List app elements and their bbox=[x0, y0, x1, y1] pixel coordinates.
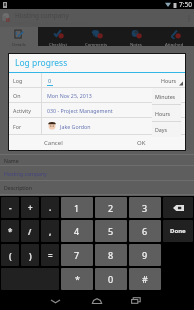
button[interactable]: OK bbox=[97, 135, 185, 150]
staticText: 7 bbox=[74, 249, 80, 261]
button[interactable]: Back bbox=[41, 291, 69, 310]
button[interactable]: Details bbox=[0, 27, 38, 46]
staticText: Comments bbox=[85, 41, 108, 46]
button[interactable]: Done bbox=[163, 220, 193, 242]
staticText: Mon Nov 25, 2013 bbox=[47, 92, 92, 99]
staticText: 7:50 bbox=[179, 0, 192, 9]
button[interactable]: Cancel bbox=[9, 135, 97, 150]
button[interactable]: 4 bbox=[61, 220, 93, 242]
staticText: Hours bbox=[161, 77, 177, 84]
button[interactable]: , bbox=[41, 220, 59, 242]
staticText: 6 bbox=[142, 225, 148, 237]
staticText: Hosting company bbox=[15, 11, 69, 20]
button[interactable]: 3 bbox=[129, 197, 161, 218]
staticText: Cancel bbox=[44, 139, 63, 147]
staticText: 4 bbox=[74, 225, 80, 237]
button[interactable]: Home bbox=[83, 291, 111, 310]
staticText: * bbox=[8, 226, 13, 237]
button[interactable]: 7 bbox=[61, 244, 93, 266]
button[interactable]: 1 bbox=[61, 197, 93, 218]
staticText: , bbox=[49, 226, 52, 237]
button[interactable]: * bbox=[1, 220, 19, 242]
staticText: - bbox=[9, 202, 12, 213]
button[interactable]: # bbox=[129, 268, 161, 290]
button[interactable]: Days bbox=[155, 122, 181, 137]
button[interactable]: 5 bbox=[95, 220, 127, 242]
button[interactable]: 2 bbox=[95, 197, 127, 218]
staticText: For bbox=[13, 123, 22, 130]
staticText: ) bbox=[29, 250, 32, 261]
button[interactable]: = bbox=[41, 244, 59, 266]
button[interactable]: - bbox=[1, 197, 19, 218]
staticText: Description bbox=[4, 184, 32, 191]
button[interactable]: ) bbox=[21, 244, 39, 266]
staticText: Checklist bbox=[49, 41, 67, 46]
button[interactable]: . bbox=[41, 197, 59, 218]
button[interactable]: / bbox=[21, 220, 39, 242]
staticText: 9 bbox=[142, 249, 148, 261]
button[interactable]: Attached bbox=[155, 27, 194, 46]
staticText: Jake Gordon bbox=[60, 123, 91, 130]
staticText: 1 bbox=[74, 202, 80, 214]
staticText: Log progress bbox=[15, 57, 68, 69]
button[interactable]: 6 bbox=[129, 220, 161, 242]
staticText: Log bbox=[13, 77, 23, 84]
staticText: . bbox=[49, 202, 52, 213]
staticText: 030 - Project Management bbox=[47, 107, 113, 114]
staticText: Hours bbox=[155, 110, 171, 117]
staticText: Details bbox=[12, 41, 26, 46]
staticText: * bbox=[75, 273, 80, 285]
staticText: 2 bbox=[108, 202, 114, 214]
staticText: On bbox=[13, 92, 21, 99]
button[interactable]: + bbox=[21, 197, 39, 218]
button[interactable]: Minutes bbox=[155, 88, 181, 104]
button[interactable]: Comments bbox=[77, 27, 116, 46]
staticText: Name bbox=[4, 157, 19, 164]
button[interactable]: Hours bbox=[155, 105, 181, 121]
staticText: # bbox=[142, 273, 148, 285]
button[interactable]: Notes bbox=[116, 27, 155, 46]
staticText: = bbox=[48, 250, 53, 261]
button[interactable]: Backspace bbox=[163, 197, 193, 218]
button[interactable]: * bbox=[61, 268, 93, 290]
button[interactable]: 0 bbox=[95, 268, 127, 290]
button[interactable]: Recent apps bbox=[122, 291, 150, 310]
staticText: Notes bbox=[130, 41, 142, 46]
staticText: / bbox=[28, 226, 32, 237]
staticText: Done bbox=[170, 227, 186, 235]
staticText: Activity bbox=[13, 107, 31, 114]
staticText: Minutes bbox=[155, 93, 176, 100]
staticText: OK bbox=[137, 139, 146, 147]
staticText: 8 bbox=[108, 249, 114, 261]
button[interactable]: 9 bbox=[129, 244, 161, 266]
staticText: Days bbox=[155, 126, 168, 133]
staticText: Hosting company bbox=[4, 170, 47, 177]
staticText: 5 bbox=[108, 225, 114, 237]
button[interactable]: ( bbox=[1, 244, 19, 266]
button[interactable]: 8 bbox=[95, 244, 127, 266]
staticText: ( bbox=[9, 250, 12, 261]
staticText: 0 bbox=[48, 77, 52, 84]
staticText: + bbox=[28, 202, 33, 213]
button[interactable]: Hours bbox=[161, 73, 177, 87]
staticText: 3 bbox=[142, 202, 148, 214]
staticText: 0 bbox=[108, 273, 114, 285]
button[interactable]: Checklist bbox=[38, 27, 77, 46]
staticText: Attached bbox=[165, 41, 184, 46]
